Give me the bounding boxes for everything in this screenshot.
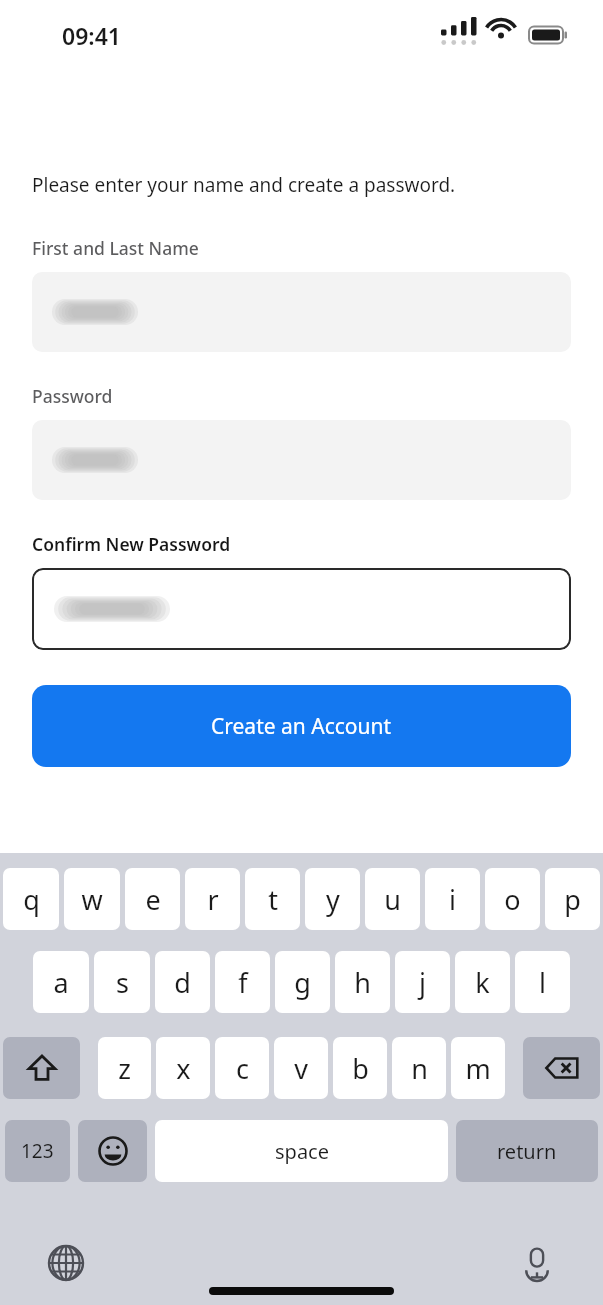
staticText: return [497, 1138, 557, 1165]
staticText: h [354, 964, 371, 1001]
button[interactable]: Dictation [511, 1237, 563, 1289]
button[interactable]: Backspace [523, 1037, 600, 1099]
staticText: 09:41 [62, 20, 121, 51]
button[interactable]: e [125, 868, 180, 930]
staticText: Please enter your name and create a pass… [32, 172, 456, 198]
staticText: f [238, 964, 248, 1001]
staticText: Password [32, 384, 113, 408]
staticText: d [174, 964, 191, 1001]
button[interactable]: z [98, 1037, 151, 1099]
button[interactable]: v [274, 1037, 328, 1099]
staticText: o [504, 881, 521, 918]
staticText: g [294, 964, 311, 1001]
button[interactable]: o [485, 868, 540, 930]
staticText: t [268, 881, 278, 918]
staticText: s [116, 964, 129, 1001]
button[interactable]: j [395, 951, 450, 1013]
button[interactable]: c [215, 1037, 269, 1099]
button[interactable]: 123 [5, 1120, 70, 1182]
button[interactable]: Change keyboard language [40, 1237, 92, 1289]
button[interactable]: p [545, 868, 600, 930]
staticText: c [236, 1050, 249, 1087]
staticText: space [275, 1138, 329, 1165]
button[interactable]: n [392, 1037, 446, 1099]
staticText: 123 [21, 1138, 54, 1164]
staticText: z [118, 1050, 131, 1087]
button[interactable]: w [64, 868, 120, 930]
staticText: l [539, 964, 546, 1001]
staticText: e [145, 881, 161, 918]
staticText: n [411, 1050, 428, 1087]
button[interactable]: b [333, 1037, 387, 1099]
button[interactable] [32, 568, 571, 650]
staticText: a [53, 964, 69, 1001]
button[interactable]: d [155, 951, 210, 1013]
staticText: m [465, 1050, 491, 1087]
button[interactable]: space [155, 1120, 448, 1182]
button[interactable]: f [215, 951, 270, 1013]
staticText: p [564, 881, 581, 918]
button[interactable] [32, 272, 571, 352]
staticText: r [207, 881, 219, 918]
button[interactable]: l [515, 951, 570, 1013]
staticText: First and Last Name [32, 236, 199, 260]
staticText: i [449, 881, 456, 918]
button[interactable]: h [335, 951, 390, 1013]
staticText: Confirm New Password [32, 532, 231, 556]
button[interactable]: m [451, 1037, 505, 1099]
staticText: w [81, 881, 103, 918]
staticText: j [419, 964, 426, 1001]
button[interactable]: r [185, 868, 240, 930]
button[interactable]: Create an Account [32, 685, 571, 767]
button[interactable]: return [456, 1120, 598, 1182]
staticText: x [176, 1050, 191, 1087]
staticText: v [294, 1050, 308, 1087]
button[interactable]: a [33, 951, 89, 1013]
button[interactable]: k [455, 951, 510, 1013]
button[interactable]: t [245, 868, 300, 930]
button[interactable]: u [365, 868, 420, 930]
staticText: Create an Account [211, 712, 392, 741]
button[interactable]: Shift [3, 1037, 80, 1099]
staticText: b [352, 1050, 369, 1087]
button[interactable] [32, 420, 571, 500]
button[interactable]: x [156, 1037, 210, 1099]
button[interactable]: g [275, 951, 330, 1013]
staticText: q [23, 881, 40, 918]
staticText: y [326, 881, 340, 918]
button[interactable]: y [305, 868, 360, 930]
button[interactable]: s [94, 951, 150, 1013]
staticText: u [384, 881, 401, 918]
button[interactable]: q [3, 868, 59, 930]
button[interactable]: Emoji [78, 1120, 147, 1182]
staticText: k [475, 964, 490, 1001]
button[interactable]: i [425, 868, 480, 930]
